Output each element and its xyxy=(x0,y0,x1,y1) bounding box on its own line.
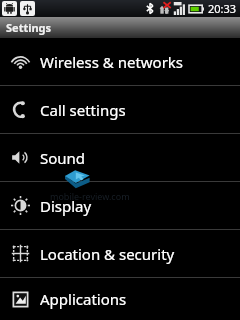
staticText: Call settings xyxy=(40,100,126,120)
staticText: Sound xyxy=(40,148,86,168)
staticText: mobile-review.com xyxy=(50,190,170,202)
staticText: Wireless & networks xyxy=(40,52,184,72)
button[interactable]: Location & security xyxy=(0,230,240,277)
staticText: Settings xyxy=(6,20,52,35)
button[interactable]: Sound xyxy=(0,134,240,181)
staticText: Location & security xyxy=(40,244,175,264)
staticText: Applications xyxy=(40,289,127,309)
button[interactable]: Call settings xyxy=(0,86,240,133)
staticText: 20:33 xyxy=(208,1,237,16)
button[interactable]: Display xyxy=(0,182,240,229)
button[interactable]: Wireless & networks xyxy=(0,38,240,85)
staticText: Display xyxy=(40,196,92,216)
button[interactable]: Applications xyxy=(0,278,240,320)
